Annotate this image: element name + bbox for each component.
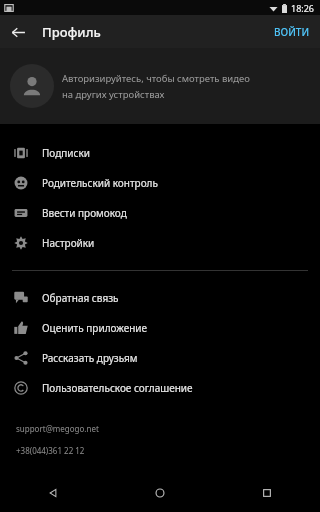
staticText: Авторизируйтесь, чтобы смотреть видео: [62, 72, 250, 85]
button[interactable]: Пользовательское соглашение: [0, 373, 320, 403]
button[interactable]: Обратная связь: [0, 283, 320, 313]
button[interactable]: Родительский контроль: [0, 168, 320, 198]
staticText: ВОЙТИ: [274, 25, 310, 39]
button[interactable]: Рассказать друзьям: [0, 343, 320, 373]
staticText: Оценить приложение: [42, 321, 148, 335]
staticText: support@megogo.net: [16, 423, 99, 434]
staticText: +38(044)361 22 12: [16, 445, 85, 456]
staticText: Профиль: [42, 23, 101, 41]
button[interactable]: Home: [106, 474, 213, 512]
staticText: Пользовательское соглашение: [42, 381, 193, 395]
button[interactable]: Back: [0, 474, 106, 512]
button[interactable]: Настройки: [0, 228, 320, 258]
button[interactable]: ВОЙТИ: [264, 20, 320, 44]
staticText: Обратная связь: [42, 291, 119, 305]
staticText: на других устройствах: [62, 88, 165, 101]
button[interactable]: Ввести промокод: [0, 198, 320, 228]
staticText: 18:26: [291, 2, 315, 14]
staticText: Подписки: [42, 146, 90, 160]
staticText: Рассказать друзьям: [42, 351, 138, 365]
button[interactable]: Оценить приложение: [0, 313, 320, 343]
button[interactable]: Подписки: [0, 138, 320, 168]
staticText: Ввести промокод: [42, 206, 127, 220]
button[interactable]: Back: [6, 20, 30, 44]
button[interactable]: Recent apps: [213, 474, 320, 512]
staticText: Родительский контроль: [42, 176, 158, 190]
button[interactable]: Авторизируйтесь, чтобы смотреть видео: [0, 48, 320, 124]
staticText: Настройки: [42, 236, 95, 250]
